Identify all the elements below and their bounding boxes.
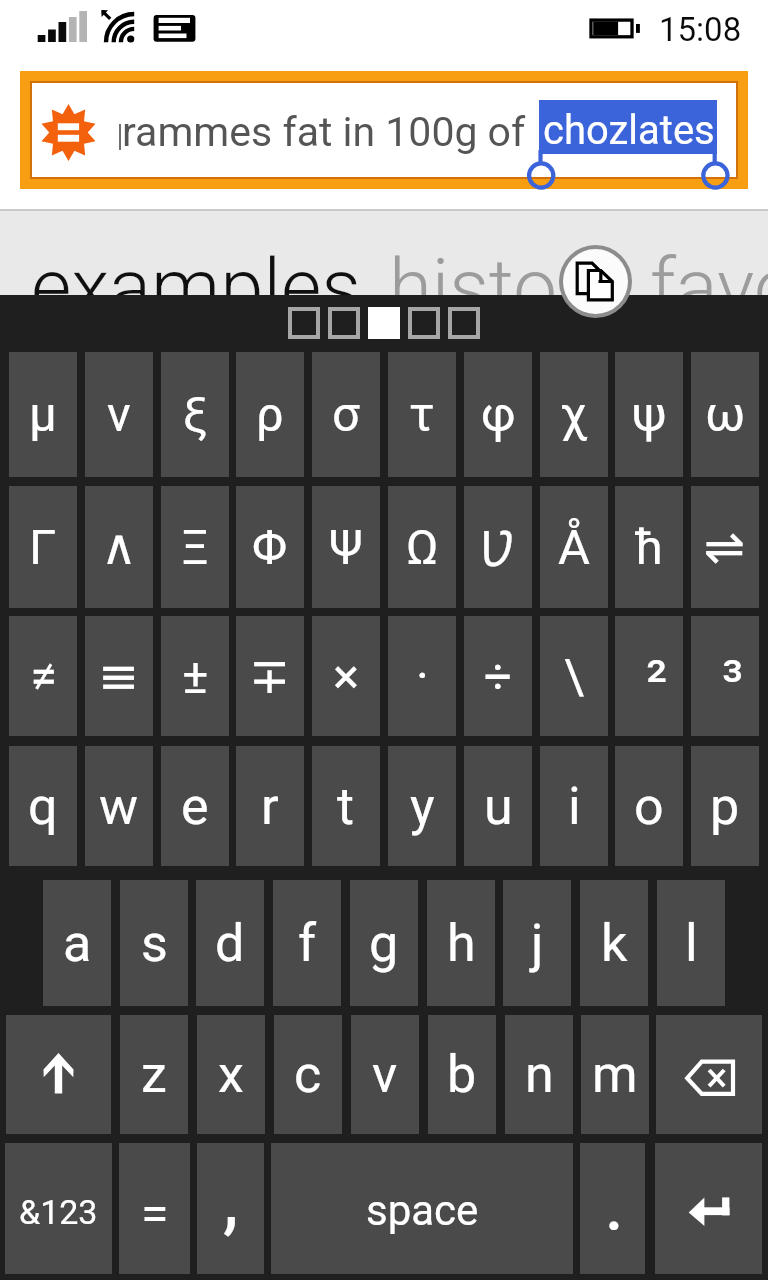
button[interactable]: = xyxy=(119,1143,190,1274)
button[interactable]: Φ xyxy=(236,486,304,608)
button[interactable]: ħ xyxy=(615,486,683,608)
button[interactable]: Γ xyxy=(9,486,77,608)
staticText: 15:08 xyxy=(659,10,742,49)
staticText: ρ xyxy=(256,386,284,443)
staticText: l xyxy=(685,913,698,974)
staticText: σ xyxy=(332,386,360,443)
button[interactable]: ∧ xyxy=(85,486,153,608)
button[interactable] xyxy=(448,307,480,339)
button[interactable]: t xyxy=(312,746,380,866)
staticText: z xyxy=(141,1044,167,1105)
button[interactable]: · xyxy=(388,616,456,736)
button[interactable]: Ξ xyxy=(161,486,229,608)
button[interactable]: q xyxy=(9,746,77,866)
button[interactable]: Copy xyxy=(559,245,632,318)
button[interactable]: ³ xyxy=(691,616,759,736)
staticText: n xyxy=(525,1044,554,1105)
button[interactable]: d xyxy=(196,880,264,1006)
button[interactable]: w xyxy=(85,746,153,866)
button[interactable]: v xyxy=(351,1015,419,1134)
button[interactable]: x xyxy=(197,1015,265,1134)
button[interactable]: r xyxy=(236,746,304,866)
button[interactable]: \ xyxy=(540,616,608,736)
staticText: = xyxy=(141,1185,169,1244)
button[interactable]: φ xyxy=(464,352,532,477)
button[interactable]: Ψ xyxy=(312,486,380,608)
button[interactable]: τ xyxy=(388,352,456,477)
button[interactable]: m xyxy=(581,1015,649,1134)
button[interactable]: ≡ xyxy=(85,616,153,736)
staticText: ÷ xyxy=(484,648,512,705)
button[interactable]: ψ xyxy=(615,352,683,477)
staticText: ∧ xyxy=(101,519,137,576)
button[interactable]: l xyxy=(657,880,725,1006)
staticText: \ xyxy=(564,648,585,705)
button[interactable]: c xyxy=(274,1015,342,1134)
button[interactable] xyxy=(288,307,320,339)
button[interactable]: e xyxy=(161,746,229,866)
button[interactable]: n xyxy=(505,1015,573,1134)
staticText: ± xyxy=(182,648,209,705)
staticText: ² xyxy=(646,647,668,715)
button[interactable]: Shift xyxy=(6,1015,111,1134)
staticText: τ xyxy=(409,386,435,443)
button[interactable]: space xyxy=(271,1143,573,1274)
button[interactable]: σ xyxy=(312,352,380,477)
button[interactable]: ⇌ xyxy=(691,486,759,608)
button[interactable]: μ xyxy=(9,352,77,477)
button[interactable] xyxy=(328,307,360,339)
button[interactable]: y xyxy=(388,746,456,866)
button[interactable]: ± xyxy=(161,616,229,736)
button[interactable]: ² xyxy=(615,616,683,736)
button[interactable]: ω xyxy=(691,352,759,477)
button[interactable]: ∓ xyxy=(236,616,304,736)
button[interactable]: j xyxy=(503,880,571,1006)
button[interactable]: Enter xyxy=(655,1143,762,1274)
button[interactable]: Backspace xyxy=(656,1015,762,1134)
button[interactable]: p xyxy=(691,746,759,866)
staticText: ħ xyxy=(635,519,663,576)
button[interactable]: s xyxy=(120,880,188,1006)
button[interactable]: chozlates xyxy=(539,100,717,154)
button[interactable]: g xyxy=(350,880,418,1006)
staticText: w xyxy=(99,776,139,837)
staticText: b xyxy=(447,1044,477,1105)
button[interactable]: history xyxy=(389,242,621,333)
button[interactable]: Ω xyxy=(388,486,456,608)
button[interactable]: z xyxy=(120,1015,188,1134)
button[interactable]: ρ xyxy=(236,352,304,477)
button[interactable] xyxy=(40,104,97,161)
button[interactable]: Ʋ xyxy=(464,486,532,608)
button[interactable]: examples xyxy=(31,242,361,333)
button[interactable]: f xyxy=(273,880,341,1006)
button[interactable]: χ xyxy=(540,352,608,477)
button[interactable] xyxy=(408,307,440,339)
staticText: p xyxy=(710,776,740,837)
button[interactable]: k xyxy=(580,880,648,1006)
button[interactable]: ≠ xyxy=(9,616,77,736)
button[interactable]: a xyxy=(43,880,111,1006)
staticText: Ξ xyxy=(181,519,209,576)
staticText: ξ xyxy=(183,386,208,443)
staticText: f xyxy=(298,913,317,974)
button[interactable]: o xyxy=(615,746,683,866)
button[interactable]: b xyxy=(428,1015,496,1134)
button[interactable]: ν xyxy=(85,352,153,477)
staticText: i xyxy=(568,776,581,837)
button[interactable]: ÷ xyxy=(464,616,532,736)
button[interactable]: × xyxy=(312,616,380,736)
button[interactable]: , xyxy=(197,1143,264,1274)
button[interactable]: h xyxy=(427,880,495,1006)
button[interactable] xyxy=(20,71,748,189)
button[interactable]: u xyxy=(464,746,532,866)
staticText: r xyxy=(261,776,279,837)
button[interactable]: ξ xyxy=(161,352,229,477)
button[interactable]: i xyxy=(540,746,608,866)
button[interactable]: . xyxy=(580,1143,645,1274)
button[interactable]: &123 xyxy=(5,1143,112,1274)
staticText: × xyxy=(333,648,360,705)
button[interactable]: Å xyxy=(540,486,608,608)
button[interactable]: favourites xyxy=(650,242,768,333)
staticText: ³ xyxy=(722,647,744,715)
